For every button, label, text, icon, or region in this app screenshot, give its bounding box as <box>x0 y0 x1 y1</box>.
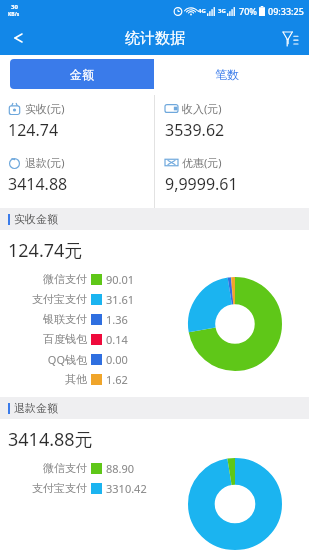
staticText: 4G <box>198 7 206 15</box>
staticText: 退款金额 <box>14 401 58 415</box>
staticText: 退款(元) <box>25 155 65 170</box>
staticText: 银联支付 <box>43 312 87 326</box>
staticText: 笔数 <box>215 67 239 82</box>
staticText: 支付宝支付 <box>32 292 87 306</box>
staticText: 统计数据 <box>125 29 185 48</box>
staticText: QQ钱包 <box>47 352 87 367</box>
staticText: 金额 <box>70 67 94 82</box>
staticText: 1.36 <box>106 312 128 327</box>
staticText: 3310.42 <box>106 481 147 496</box>
staticText: 收入(元) <box>182 101 222 116</box>
staticText: 09:33:25 <box>268 5 304 17</box>
staticText: 实收金额 <box>14 212 58 226</box>
button[interactable]: 金额 <box>10 59 154 89</box>
staticText: 3414.88元 <box>8 427 93 452</box>
staticText: 3414.88 <box>8 173 68 195</box>
staticText: 微信支付 <box>43 272 87 286</box>
staticText: 124.74 <box>8 119 59 141</box>
staticText: 90.01 <box>106 272 135 287</box>
button[interactable]: Filter <box>271 21 309 55</box>
staticText: 1.62 <box>106 372 128 387</box>
staticText: 3539.62 <box>165 119 225 141</box>
button[interactable]: Back <box>0 21 36 55</box>
staticText: 实收(元) <box>25 101 65 116</box>
staticText: 88.90 <box>106 461 135 476</box>
staticText: KB/s <box>8 11 20 18</box>
staticText: 3G <box>218 7 226 15</box>
staticText: 百度钱包 <box>43 332 87 346</box>
staticText: 微信支付 <box>43 461 87 475</box>
staticText: 70% <box>239 5 257 17</box>
staticText: 30 <box>11 3 18 11</box>
staticText: 0.14 <box>106 332 128 347</box>
staticText: 0.00 <box>106 352 128 367</box>
staticText: 支付宝支付 <box>32 481 87 495</box>
staticText: 优惠(元) <box>182 155 222 170</box>
staticText: 124.74元 <box>8 238 83 263</box>
staticText: 31.61 <box>106 292 135 307</box>
staticText: 9,9999.61 <box>165 173 238 195</box>
button[interactable]: 笔数 <box>154 59 299 89</box>
staticText: 其他 <box>65 372 87 386</box>
